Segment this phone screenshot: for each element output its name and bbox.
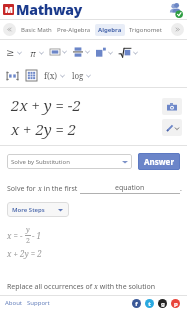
button[interactable]: box xyxy=(50,48,73,56)
button[interactable]: Matrix grid xyxy=(25,69,38,82)
button[interactable]: Edit problem xyxy=(162,119,182,136)
button[interactable]: About xyxy=(5,299,23,307)
button[interactable]: Facebook xyxy=(132,299,141,308)
button[interactable]: Account xyxy=(167,2,183,18)
staticText: 2 xyxy=(26,236,30,246)
staticText: in the first xyxy=(42,184,80,194)
staticText: Solve by Substitution xyxy=(11,158,70,166)
button[interactable]: Pinterest xyxy=(171,299,180,308)
staticText: y xyxy=(26,225,30,235)
staticText: Replace all occurrences of xyxy=(7,282,94,292)
button[interactable]: f(x) xyxy=(44,70,65,81)
button[interactable]: More Steps xyxy=(7,202,69,217)
staticText: Algebra xyxy=(98,26,122,34)
button[interactable]: Answer xyxy=(138,153,180,170)
staticText: x xyxy=(94,282,98,292)
staticText: − 1 xyxy=(32,230,42,241)
button[interactable]: fraction xyxy=(73,46,96,58)
staticText: f(x) xyxy=(44,70,58,81)
button[interactable]: Scan problem with camera xyxy=(162,98,182,115)
staticText: f xyxy=(135,300,138,308)
button[interactable]: Trigonomet xyxy=(129,24,162,36)
button[interactable]: equation xyxy=(115,183,145,193)
staticText: π xyxy=(30,47,36,58)
staticText: ≥ xyxy=(6,47,15,58)
button[interactable]: Support xyxy=(27,299,50,307)
staticText: Trigonomet xyxy=(129,26,162,34)
button[interactable]: M xyxy=(3,0,82,19)
button[interactable]: Basic Math xyxy=(21,24,52,36)
button[interactable]: exponent xyxy=(96,47,119,58)
button[interactable]: π xyxy=(28,47,50,58)
button[interactable]: 2x + y = −2 xyxy=(11,95,81,139)
staticText: x + 2y = 2 xyxy=(7,248,42,259)
button[interactable]: Matrix row xyxy=(5,70,20,82)
staticText: t xyxy=(148,300,151,308)
button[interactable]: Solve by Substitution xyxy=(7,154,132,169)
staticText: p xyxy=(174,300,178,308)
staticText: M xyxy=(5,4,13,15)
button[interactable]: Algebra xyxy=(95,24,125,36)
staticText: More Steps xyxy=(12,206,45,214)
button[interactable]: square root xyxy=(119,47,144,58)
staticText: x = − xyxy=(7,230,23,241)
staticText: Mathway xyxy=(16,0,82,19)
staticText: x + 2y = 2 xyxy=(11,119,77,139)
staticText: g xyxy=(161,300,165,308)
button[interactable]: log xyxy=(72,70,91,81)
staticText: log xyxy=(72,70,84,81)
button[interactable]: Google Plus xyxy=(158,299,167,308)
button[interactable]: Twitter xyxy=(145,299,154,308)
staticText: Answer xyxy=(144,156,174,167)
staticText: x xyxy=(38,184,42,194)
button[interactable]: Pre-Algebra xyxy=(57,24,91,36)
button[interactable]: Previous topics xyxy=(3,23,16,36)
button[interactable]: ≥ xyxy=(5,47,28,58)
staticText: Pre-Algebra xyxy=(57,26,91,34)
staticText: Solve for xyxy=(7,184,38,194)
staticText: Basic Math xyxy=(21,26,52,34)
staticText: 2x + y = −2 xyxy=(11,95,81,115)
staticText: with the solution xyxy=(98,282,156,292)
button[interactable]: Next topics xyxy=(171,23,184,36)
